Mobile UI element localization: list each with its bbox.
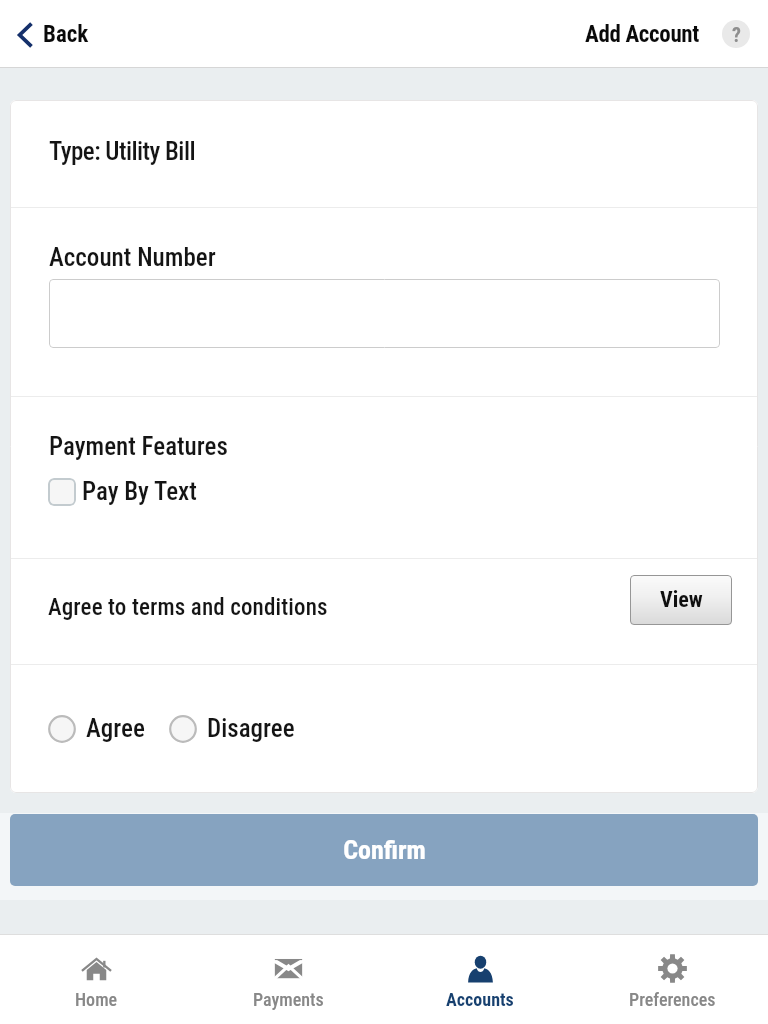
button[interactable]: Preferences	[576, 935, 768, 1024]
button[interactable]: Payments	[192, 935, 384, 1024]
staticText: Payments	[253, 989, 324, 1010]
button[interactable]: Agree	[48, 714, 145, 743]
button[interactable]: Confirm	[10, 814, 758, 886]
button[interactable]: Accounts	[384, 935, 576, 1024]
staticText: Back	[43, 21, 89, 48]
staticText: Disagree	[207, 714, 295, 743]
staticText: Preferences	[629, 989, 716, 1010]
button[interactable]: Pay By Text	[48, 477, 197, 506]
button[interactable]: Add Account	[579, 13, 706, 56]
button[interactable]: Disagree	[169, 714, 295, 743]
button[interactable]: Home	[0, 935, 192, 1024]
staticText: Accounts	[446, 989, 514, 1010]
staticText: Home	[75, 989, 118, 1010]
staticText: Confirm	[343, 835, 426, 865]
staticText: Add Account	[585, 21, 700, 48]
staticText: Account Number	[49, 243, 216, 272]
staticText: ?	[732, 23, 741, 46]
button[interactable]: Back	[0, 13, 99, 56]
staticText: Agree to terms and conditions	[48, 594, 328, 621]
staticText: Pay By Text	[82, 477, 197, 506]
staticText: Payment Features	[49, 432, 228, 461]
button[interactable]: Help	[722, 20, 750, 48]
staticText: View	[660, 587, 703, 613]
button[interactable]: View	[630, 575, 732, 625]
staticText: Agree	[86, 714, 145, 743]
button[interactable]: Account Number field	[49, 279, 720, 348]
staticText: Type: Utility Bill	[49, 137, 195, 166]
